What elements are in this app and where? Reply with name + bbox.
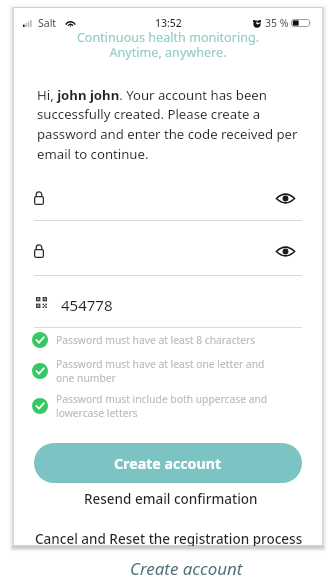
staticText: 454778: [61, 295, 113, 315]
staticText: Cancel and Reset the registration proces…: [35, 530, 303, 546]
button[interactable]: Show password: [268, 184, 302, 212]
staticText: 35 %: [265, 16, 289, 30]
staticText: Resend email confirmation: [84, 490, 258, 508]
button[interactable]: Resend email confirmation: [37, 489, 305, 508]
staticText: Password must have at least one letter a…: [56, 357, 265, 371]
staticText: Create account: [130, 557, 243, 580]
button[interactable]: Cancel and Reset the registration proces…: [35, 530, 303, 546]
staticText: Continuous health monitoring. Anytime, a…: [13, 29, 323, 61]
staticText: Password must have at least 8 characters: [56, 333, 256, 347]
staticText: one number: [56, 371, 116, 385]
staticText: Create account: [114, 454, 222, 473]
staticText: Hi, john john. Your account has been suc…: [37, 86, 303, 163]
button[interactable]: Show password: [268, 237, 302, 265]
staticText: 13:52: [155, 16, 182, 30]
button[interactable]: Create account: [34, 443, 302, 483]
staticText: Password must include both uppercase and: [56, 392, 268, 406]
staticText: lowercase letters: [56, 406, 138, 420]
staticText: Salt: [38, 16, 57, 30]
